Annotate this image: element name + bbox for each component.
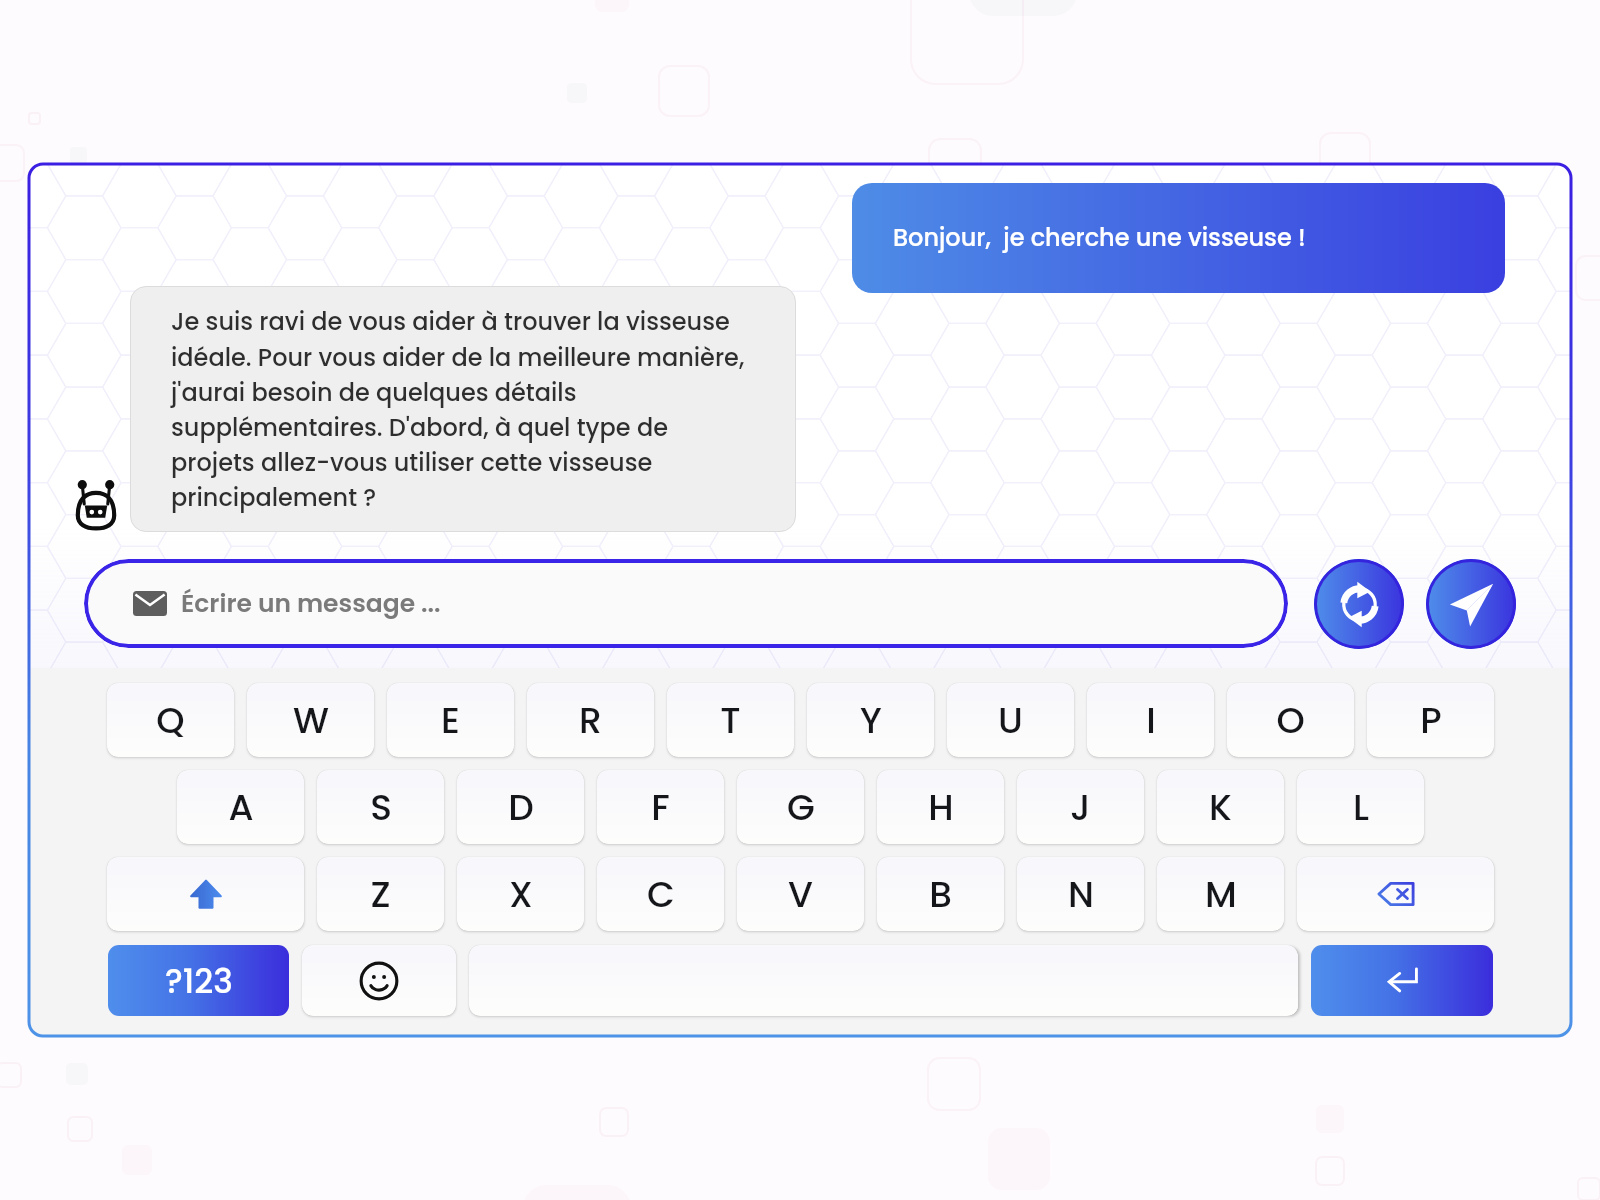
button[interactable]: S: [317, 770, 444, 844]
button[interactable]: B: [877, 857, 1004, 931]
staticText: T: [720, 695, 741, 745]
button[interactable]: Q: [107, 683, 234, 757]
button[interactable]: T: [667, 683, 794, 757]
button[interactable]: Z: [317, 857, 444, 931]
staticText: Y: [860, 695, 882, 745]
staticText: V: [788, 869, 813, 919]
staticText: C: [647, 869, 675, 919]
staticText: B: [929, 869, 952, 919]
button[interactable]: L: [1297, 770, 1424, 844]
staticText: L: [1353, 782, 1369, 832]
staticText: I: [1146, 695, 1156, 745]
staticText: Q: [156, 695, 185, 745]
staticText: W: [293, 695, 329, 745]
button[interactable]: Entrée: [1311, 945, 1493, 1016]
staticText: Je suis ravi de vous aider à trouver la …: [171, 305, 751, 514]
button[interactable]: ?123: [108, 945, 289, 1016]
button[interactable]: Emoji: [302, 945, 456, 1016]
button[interactable]: Écrire un message ...: [84, 559, 1288, 648]
staticText: K: [1209, 782, 1232, 832]
staticText: H: [928, 782, 954, 832]
staticText: S: [370, 782, 392, 832]
button[interactable]: U: [947, 683, 1074, 757]
button[interactable]: P: [1367, 683, 1494, 757]
staticText: J: [1070, 782, 1091, 832]
button[interactable]: K: [1157, 770, 1284, 844]
button[interactable]: O: [1227, 683, 1354, 757]
staticText: ?123: [165, 958, 233, 1004]
button[interactable]: N: [1017, 857, 1144, 931]
button[interactable]: M: [1157, 857, 1284, 931]
staticText: P: [1420, 695, 1442, 745]
button[interactable]: W: [247, 683, 374, 757]
button[interactable]: I: [1087, 683, 1214, 757]
button[interactable]: F: [597, 770, 724, 844]
button[interactable]: Assistant: [68, 476, 124, 532]
button[interactable]: Envoyer: [1426, 559, 1516, 649]
button[interactable]: Je suis ravi de vous aider à trouver la …: [130, 286, 796, 532]
staticText: Z: [370, 869, 391, 919]
button[interactable]: V: [737, 857, 864, 931]
button[interactable]: R: [527, 683, 654, 757]
button[interactable]: X: [457, 857, 584, 931]
staticText: M: [1205, 869, 1237, 919]
button[interactable]: D: [457, 770, 584, 844]
staticText: O: [1276, 695, 1305, 745]
button[interactable]: Bonjour, je cherche une visseuse !: [852, 183, 1505, 293]
staticText: F: [651, 782, 670, 832]
staticText: N: [1068, 869, 1094, 919]
button[interactable]: A: [177, 770, 304, 844]
staticText: R: [579, 695, 602, 745]
button[interactable]: Rafraichir: [1314, 559, 1404, 649]
staticText: Bonjour, je cherche une visseuse !: [893, 221, 1306, 255]
staticText: A: [228, 782, 254, 832]
button[interactable]: H: [877, 770, 1004, 844]
button[interactable]: C: [597, 857, 724, 931]
button[interactable]: Majuscule: [107, 857, 304, 931]
staticText: U: [998, 695, 1023, 745]
button[interactable]: E: [387, 683, 514, 757]
staticText: G: [787, 782, 815, 832]
staticText: D: [508, 782, 534, 832]
button[interactable]: J: [1017, 770, 1144, 844]
staticText: X: [509, 869, 533, 919]
button[interactable]: G: [737, 770, 864, 844]
button[interactable]: Y: [807, 683, 934, 757]
button[interactable]: Effacer: [1297, 857, 1494, 931]
staticText: E: [441, 695, 460, 745]
staticText: Écrire un message ...: [181, 586, 441, 621]
